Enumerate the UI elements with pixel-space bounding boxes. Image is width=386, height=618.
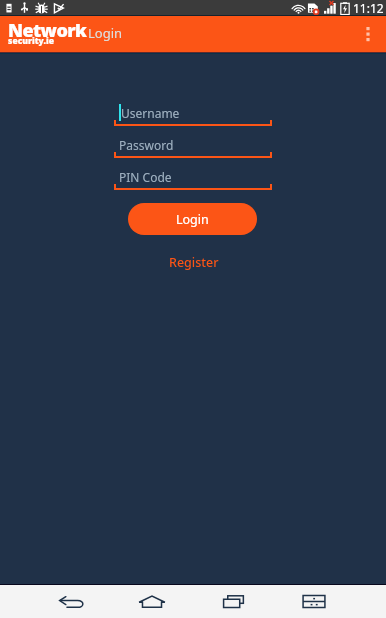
staticText: 11:12 bbox=[353, 0, 384, 16]
staticText: Password bbox=[119, 137, 174, 153]
staticText: Username bbox=[121, 105, 180, 121]
button[interactable]: Recent apps bbox=[212, 585, 256, 618]
staticText: security.ie bbox=[8, 35, 54, 47]
button[interactable]: Back bbox=[50, 585, 94, 618]
button[interactable]: More options bbox=[355, 21, 381, 47]
button[interactable]: Password bbox=[114, 136, 272, 158]
staticText: PIN Code bbox=[119, 169, 172, 185]
button[interactable]: Username bbox=[114, 104, 272, 126]
button[interactable]: PIN Code bbox=[114, 168, 272, 190]
button[interactable]: Keyboard bbox=[292, 585, 336, 618]
staticText: Login bbox=[176, 211, 209, 228]
staticText: Network bbox=[8, 18, 87, 43]
button[interactable]: Home bbox=[130, 585, 174, 618]
staticText: Login bbox=[88, 24, 123, 42]
staticText: Register bbox=[169, 254, 219, 271]
button[interactable]: Register bbox=[161, 250, 227, 274]
button[interactable]: Login bbox=[128, 203, 257, 235]
